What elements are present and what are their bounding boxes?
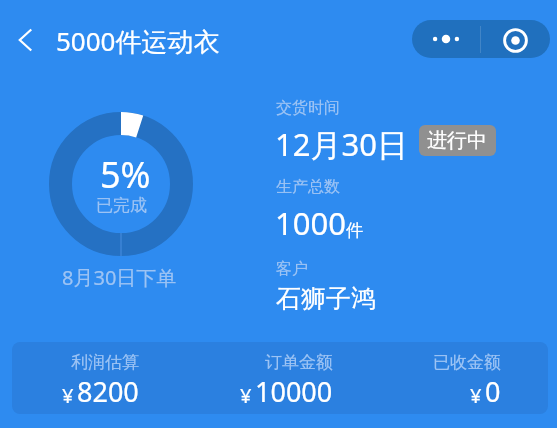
staticText: 0 xyxy=(485,373,501,410)
staticText: 订单金额 xyxy=(265,352,333,373)
staticText: ¥ xyxy=(240,382,252,409)
staticText: ¥ xyxy=(470,382,482,409)
staticText: 石狮子鸿 xyxy=(276,283,376,314)
staticText: 生产总数 xyxy=(276,177,340,197)
button[interactable]: More options xyxy=(412,20,480,58)
staticText: 客户 xyxy=(276,259,308,279)
staticText: 10000 xyxy=(255,373,333,410)
staticText: 8200 xyxy=(77,373,139,410)
button[interactable]: Close mini program xyxy=(481,20,550,58)
staticText: 5000件运动衣 xyxy=(56,23,220,59)
staticText: 已收金额 xyxy=(433,352,501,373)
staticText: 5% xyxy=(100,150,151,199)
staticText: 件 xyxy=(346,220,363,241)
staticText: 交货时间 xyxy=(276,98,340,118)
staticText: ¥ xyxy=(62,382,74,409)
staticText: 1000 xyxy=(275,202,346,244)
button[interactable]: 已收金额 xyxy=(433,352,501,410)
staticText: 利润估算 xyxy=(71,352,139,373)
button[interactable]: 进行中 xyxy=(419,125,496,156)
button[interactable]: 订单金额 xyxy=(240,352,333,410)
staticText: 已完成 xyxy=(96,195,147,216)
staticText: 8月30日下单 xyxy=(62,264,177,291)
button[interactable]: Back xyxy=(4,18,48,62)
staticText: 12月30日 xyxy=(275,123,408,165)
button[interactable]: 利润估算 xyxy=(62,352,139,410)
staticText: 进行中 xyxy=(427,128,487,153)
